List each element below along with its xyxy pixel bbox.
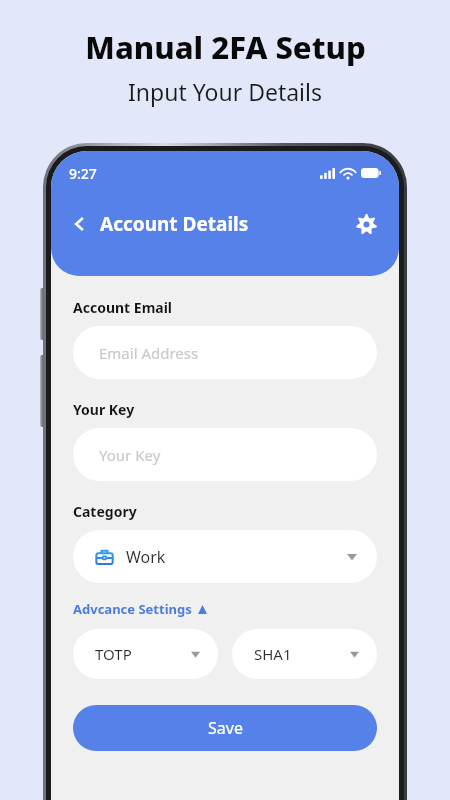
staticText: Your Key — [99, 445, 161, 465]
staticText: Account Details — [100, 211, 249, 237]
staticText: Email Address — [99, 343, 199, 363]
button[interactable]: Back — [65, 209, 95, 239]
button[interactable]: SHA1 — [232, 629, 377, 679]
button[interactable]: Work — [73, 530, 377, 583]
staticText: Your Key — [73, 400, 135, 419]
staticText: Work — [126, 546, 166, 568]
button[interactable]: Email Address — [73, 326, 377, 379]
staticText: SHA1 — [254, 644, 292, 664]
staticText: Category — [73, 502, 137, 521]
staticText: Account Email — [73, 298, 173, 317]
button[interactable]: TOTP — [73, 629, 218, 679]
button[interactable]: Advcance Settings — [73, 600, 207, 618]
button[interactable]: Your Key — [73, 428, 377, 481]
staticText: Manual 2FA Setup — [85, 26, 366, 68]
staticText: TOTP — [95, 644, 132, 664]
staticText: 9:27 — [69, 164, 97, 183]
button[interactable]: Settings — [349, 207, 383, 241]
staticText: Input Your Details — [128, 76, 322, 107]
staticText: Save — [208, 717, 243, 739]
button[interactable]: Save — [73, 705, 377, 751]
staticText: Advcance Settings — [73, 600, 192, 618]
